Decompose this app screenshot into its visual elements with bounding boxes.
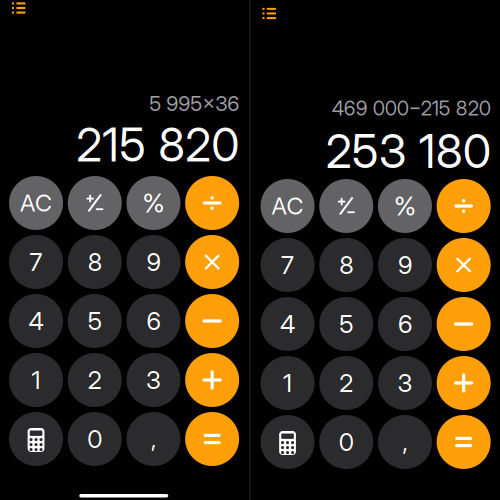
button[interactable]: 7 xyxy=(261,238,315,292)
button[interactable]: 2 xyxy=(68,353,122,407)
button[interactable]: 0 xyxy=(319,415,373,469)
staticText: 253 180 xyxy=(326,123,491,179)
button[interactable]: 5 xyxy=(319,297,373,351)
button[interactable]: AC xyxy=(9,176,63,230)
button[interactable]: 8 xyxy=(68,235,122,289)
staticText: 3 xyxy=(397,368,412,398)
staticText: % xyxy=(142,187,164,219)
staticText: 7 xyxy=(281,250,294,280)
button[interactable]: 9 xyxy=(126,235,180,289)
button[interactable]: Calculator xyxy=(9,412,63,466)
button[interactable]: Calculator xyxy=(261,415,315,469)
button[interactable]: Subtract xyxy=(437,297,491,351)
button[interactable]: 9 xyxy=(378,238,432,292)
staticText: AC xyxy=(20,189,52,217)
button[interactable]: 3 xyxy=(126,353,180,407)
staticText: 3 xyxy=(146,365,161,395)
staticText: 0 xyxy=(339,427,354,457)
button[interactable]: 1 xyxy=(261,356,315,410)
button[interactable]: History xyxy=(7,0,31,19)
button[interactable]: 3 xyxy=(378,356,432,410)
button[interactable]: Multiply xyxy=(437,238,491,292)
button[interactable]: AC xyxy=(261,179,315,233)
button[interactable]: 4 xyxy=(261,297,315,351)
staticText: 5 995×36 xyxy=(149,91,239,116)
button[interactable]: Divide xyxy=(437,179,491,233)
button[interactable]: 6 xyxy=(378,297,432,351)
staticText: 2 xyxy=(339,368,353,398)
button[interactable]: % xyxy=(378,179,432,233)
staticText: 6 xyxy=(398,309,412,339)
button[interactable]: % xyxy=(126,176,180,230)
staticText: % xyxy=(394,190,416,222)
staticText: 4 xyxy=(29,306,44,336)
staticText: 215 820 xyxy=(76,117,239,173)
staticText: 9 xyxy=(146,247,160,277)
staticText: 7 xyxy=(30,247,43,277)
staticText: 0 xyxy=(87,424,102,454)
staticText: 5 xyxy=(88,306,102,336)
button[interactable]: 0 xyxy=(68,412,122,466)
button[interactable]: Plus minus xyxy=(68,176,122,230)
button[interactable]: 8 xyxy=(319,238,373,292)
button[interactable]: Plus minus xyxy=(319,179,373,233)
button[interactable]: History xyxy=(257,2,281,24)
button[interactable]: 5 xyxy=(68,294,122,348)
button[interactable]: Subtract xyxy=(185,294,239,348)
button[interactable]: Equals xyxy=(185,412,239,466)
button[interactable]: , xyxy=(126,412,180,466)
button[interactable]: Equals xyxy=(437,415,491,469)
staticText: AC xyxy=(272,192,304,220)
staticText: 1 xyxy=(283,368,292,398)
button[interactable]: 1 xyxy=(9,353,63,407)
staticText: 9 xyxy=(398,250,412,280)
button[interactable]: Multiply xyxy=(185,235,239,289)
button[interactable]: Add xyxy=(185,353,239,407)
button[interactable]: , xyxy=(378,415,432,469)
staticText: , xyxy=(151,424,156,454)
button[interactable]: 7 xyxy=(9,235,63,289)
staticText: 8 xyxy=(339,250,353,280)
staticText: 2 xyxy=(88,365,102,395)
staticText: 469 000−215 820 xyxy=(332,96,491,120)
button[interactable]: Add xyxy=(437,356,491,410)
staticText: 1 xyxy=(32,365,41,395)
staticText: 5 xyxy=(339,309,353,339)
staticText: , xyxy=(402,427,407,457)
staticText: 4 xyxy=(280,309,295,339)
button[interactable]: 6 xyxy=(126,294,180,348)
staticText: 8 xyxy=(88,247,102,277)
staticText: 6 xyxy=(146,306,160,336)
button[interactable]: 4 xyxy=(9,294,63,348)
button[interactable]: Divide xyxy=(185,176,239,230)
button[interactable]: 2 xyxy=(319,356,373,410)
